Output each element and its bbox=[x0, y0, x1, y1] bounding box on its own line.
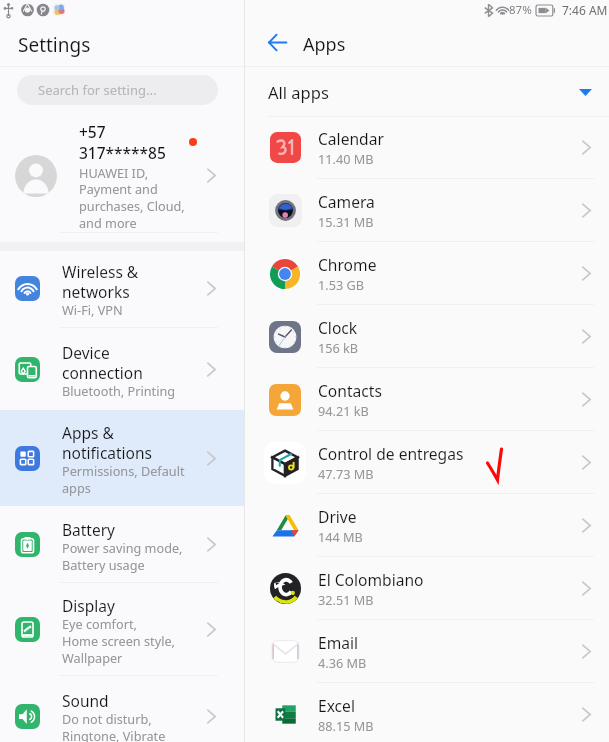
button[interactable]: Excel bbox=[245, 683, 609, 742]
button[interactable]: Clock bbox=[245, 305, 609, 368]
staticText: Chrome bbox=[318, 254, 377, 275]
staticText: 1.53 GB bbox=[318, 276, 364, 293]
button[interactable]: Search for setting... bbox=[17, 75, 218, 105]
button[interactable]: Email bbox=[245, 620, 609, 683]
staticText: Eye comfort, Home screen style, Wallpape… bbox=[62, 615, 175, 666]
staticText: Settings bbox=[18, 32, 91, 58]
button[interactable]: Device connection bbox=[0, 328, 244, 410]
button[interactable]: Back bbox=[267, 34, 287, 51]
staticText: 32.51 MB bbox=[318, 591, 374, 608]
staticText: +57 317*****85 bbox=[79, 121, 166, 164]
staticText: Power saving mode, Battery usage bbox=[62, 539, 183, 573]
button[interactable]: Control de entregas bbox=[245, 431, 609, 494]
button[interactable]: Drive bbox=[245, 494, 609, 557]
button[interactable]: El Colombiano bbox=[245, 557, 609, 620]
staticText: Clock bbox=[318, 317, 358, 338]
staticText: Device connection bbox=[62, 342, 143, 383]
button[interactable] bbox=[245, 67, 609, 116]
staticText: Do not disturb, Ringtone, Vibrate bbox=[62, 710, 166, 742]
staticText: 47.73 MB bbox=[318, 465, 374, 482]
staticText: Apps bbox=[303, 32, 346, 57]
staticText: Camera bbox=[318, 191, 375, 212]
button[interactable]: Sound bbox=[0, 676, 244, 742]
button[interactable]: Display bbox=[0, 583, 244, 676]
staticText: Excel bbox=[318, 695, 355, 716]
staticText: 87% bbox=[509, 2, 532, 18]
staticText: 144 MB bbox=[318, 528, 363, 545]
staticText: Battery bbox=[62, 519, 116, 540]
staticText: Drive bbox=[318, 506, 357, 527]
staticText: 11.40 MB bbox=[318, 150, 374, 167]
staticText: 156 kB bbox=[318, 339, 359, 356]
staticText: Apps & notifications bbox=[62, 422, 152, 463]
staticText: 7:46 AM bbox=[562, 2, 608, 18]
button[interactable]: Apps & notifications bbox=[0, 410, 244, 506]
button[interactable]: Wireless & networks bbox=[0, 248, 244, 328]
button[interactable]: Contacts bbox=[245, 368, 609, 431]
staticText: Search for setting... bbox=[38, 81, 157, 99]
staticText: 15.31 MB bbox=[318, 213, 374, 230]
staticText: Wi-Fi, VPN bbox=[62, 301, 123, 318]
button[interactable]: Calendar bbox=[245, 116, 609, 179]
button[interactable] bbox=[0, 118, 244, 236]
staticText: Email bbox=[318, 632, 359, 653]
staticText: Contacts bbox=[318, 380, 382, 401]
staticText: Calendar bbox=[318, 128, 384, 149]
staticText: Permissions, Default apps bbox=[62, 462, 185, 496]
staticText: 88.15 MB bbox=[318, 717, 374, 734]
button[interactable]: Chrome bbox=[245, 242, 609, 305]
staticText: All apps bbox=[268, 81, 329, 103]
staticText: 94.21 kB bbox=[318, 402, 369, 419]
button[interactable]: Battery bbox=[0, 506, 244, 583]
staticText: Sound bbox=[62, 690, 109, 711]
staticText: Wireless & networks bbox=[62, 261, 139, 302]
staticText: Control de entregas bbox=[318, 443, 464, 464]
button[interactable]: Camera bbox=[245, 179, 609, 242]
staticText: 4.36 MB bbox=[318, 654, 367, 671]
staticText: El Colombiano bbox=[318, 569, 424, 590]
staticText: Display bbox=[62, 595, 115, 616]
staticText: HUAWEI ID, Payment and purchases, Cloud,… bbox=[79, 164, 185, 232]
staticText: Bluetooth, Printing bbox=[62, 382, 176, 399]
